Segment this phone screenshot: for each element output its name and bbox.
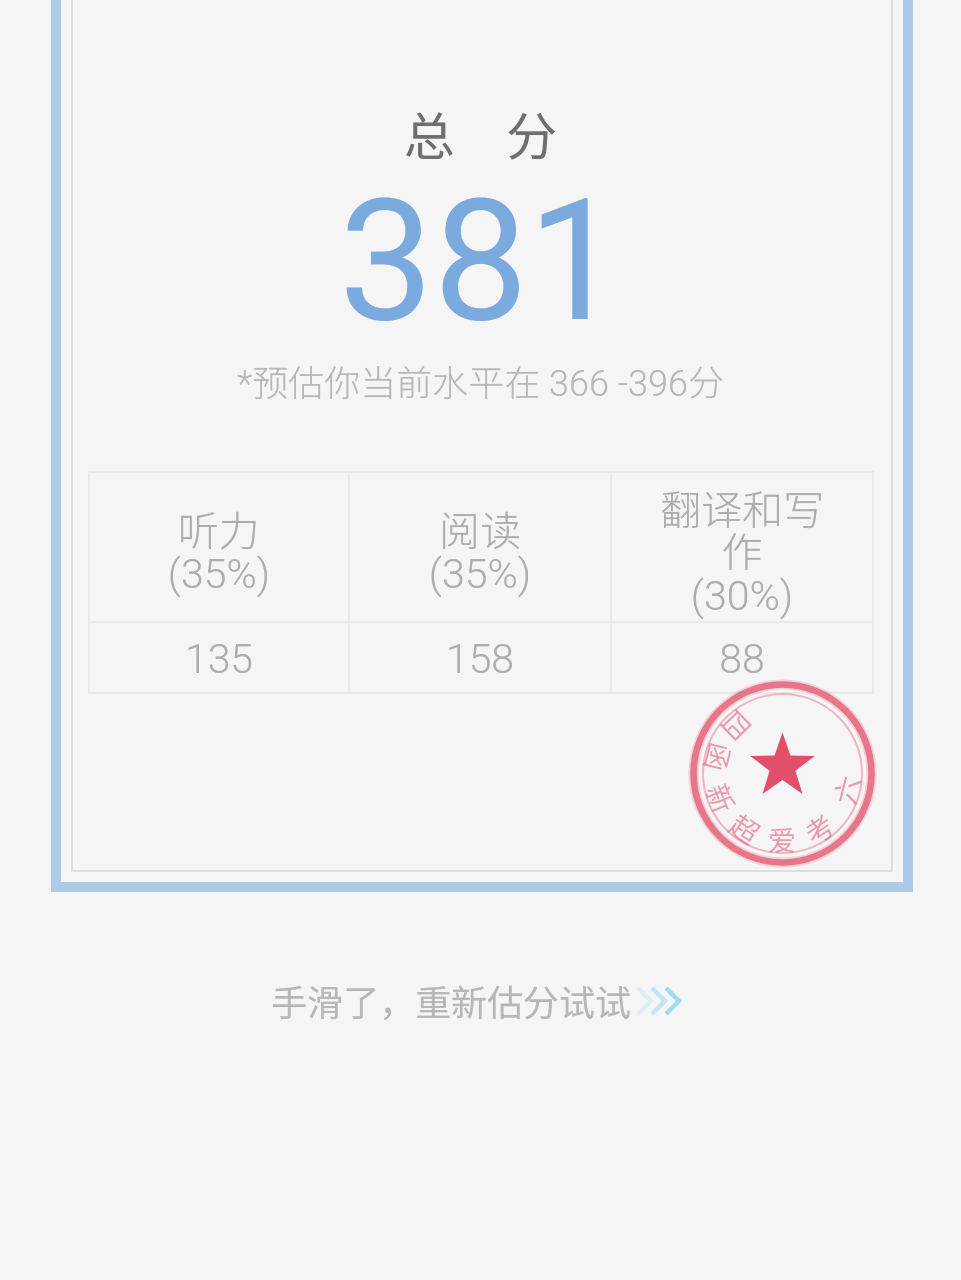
staticText: 88	[611, 635, 873, 683]
staticText: 听力 (35%)	[89, 498, 349, 598]
button[interactable]: 88	[611, 622, 873, 693]
button[interactable]: 阅读 (35%)	[349, 472, 611, 622]
staticText: 超	[722, 803, 769, 854]
staticText: 158	[349, 635, 611, 683]
staticText: 总 分	[404, 96, 558, 170]
button[interactable]: 135	[89, 622, 349, 693]
button[interactable]: 158	[349, 622, 611, 693]
staticText: 六	[823, 770, 870, 809]
staticText: 阅读 (35%)	[349, 498, 611, 598]
staticText: 新	[697, 777, 746, 820]
staticText: 考	[796, 803, 843, 854]
button[interactable]: 听力 (35%)	[89, 472, 349, 622]
staticText: *预估你当前水平在 366 -396分	[237, 354, 724, 406]
staticText: 函	[695, 738, 742, 777]
staticText: 381	[339, 163, 623, 360]
staticText: 135	[89, 635, 349, 683]
staticText: 手滑了，重新估分试试	[271, 974, 632, 1026]
staticText: 四	[712, 702, 761, 751]
staticText: 爱	[768, 819, 797, 860]
button[interactable]: 翻译和写 作 (30%)	[611, 472, 873, 622]
other: Official seal	[690, 681, 875, 866]
other: Estimate again	[632, 980, 690, 1020]
button[interactable]: 手滑了，重新估分试试	[251, 966, 710, 1034]
staticText: 翻译和写 作 (30%)	[611, 477, 873, 620]
